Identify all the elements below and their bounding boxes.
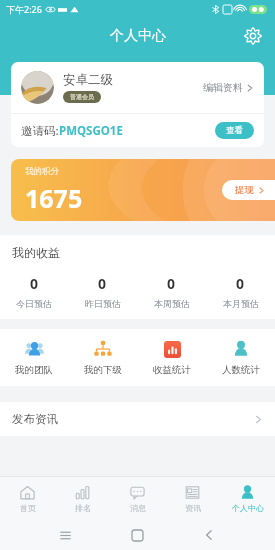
button[interactable]: 0 xyxy=(68,274,137,309)
button[interactable]: 0 xyxy=(206,274,275,309)
button[interactable]: 我的积分 xyxy=(11,159,275,221)
button[interactable]: 0 xyxy=(137,274,206,309)
staticText: 首页 xyxy=(20,503,36,513)
staticText: 提现 xyxy=(235,184,254,196)
button[interactable]: 查看 xyxy=(215,122,254,139)
staticText: PMQSGO1E xyxy=(59,123,123,139)
staticText: 今日预估 xyxy=(16,298,52,309)
staticText: 发布资讯 xyxy=(12,412,58,426)
staticText: 0 xyxy=(30,274,39,293)
button[interactable]: 收益统计 xyxy=(137,337,206,378)
staticText: 昨日预估 xyxy=(85,298,121,309)
button[interactable]: 资讯 xyxy=(165,476,220,520)
button[interactable]: 发布资讯 xyxy=(0,402,275,436)
button[interactable]: 提现 xyxy=(222,180,275,200)
staticText: 0 xyxy=(167,274,176,293)
staticText: 我的团队 xyxy=(15,364,53,376)
staticText: 收益统计 xyxy=(153,364,191,376)
button[interactable]: 0 xyxy=(0,274,68,309)
button[interactable]: 我的下级 xyxy=(68,337,137,378)
staticText: 排名 xyxy=(75,503,91,513)
button[interactable]: 个人中心 xyxy=(220,476,275,520)
button[interactable]: 我的团队 xyxy=(0,337,68,378)
staticText: 个人中心 xyxy=(110,27,166,45)
staticText: 消息 xyxy=(130,503,146,513)
button[interactable]: 邀请码: xyxy=(11,114,264,147)
button[interactable]: 首页 xyxy=(0,476,55,520)
staticText: 本周预估 xyxy=(154,298,190,309)
staticText: 安卓二级 xyxy=(63,72,113,88)
staticText: 本月预估 xyxy=(223,298,259,309)
button[interactable]: 安卓二级 xyxy=(11,62,264,113)
staticText: 我的下级 xyxy=(84,364,122,376)
button[interactable]: 消息 xyxy=(110,476,165,520)
staticText: 我的收益 xyxy=(12,245,60,260)
staticText: 人数统计 xyxy=(222,364,260,376)
button[interactable]: 人数统计 xyxy=(206,337,275,378)
staticText: 查看 xyxy=(226,125,243,136)
staticText: 个人中心 xyxy=(232,503,264,513)
staticText: 编辑资料 xyxy=(203,81,243,94)
staticText: 邀请码: xyxy=(21,123,59,139)
staticText: 0 xyxy=(98,274,107,293)
staticText: 我的积分 xyxy=(25,166,59,177)
staticText: 1675 xyxy=(25,181,83,215)
button[interactable]: 排名 xyxy=(55,476,110,520)
staticText: 普通会员 xyxy=(70,93,94,101)
button[interactable]: 设置 xyxy=(239,22,267,50)
staticText: 资讯 xyxy=(185,503,201,513)
staticText: 0 xyxy=(236,274,245,293)
staticText: 下午2:26 xyxy=(6,3,42,15)
